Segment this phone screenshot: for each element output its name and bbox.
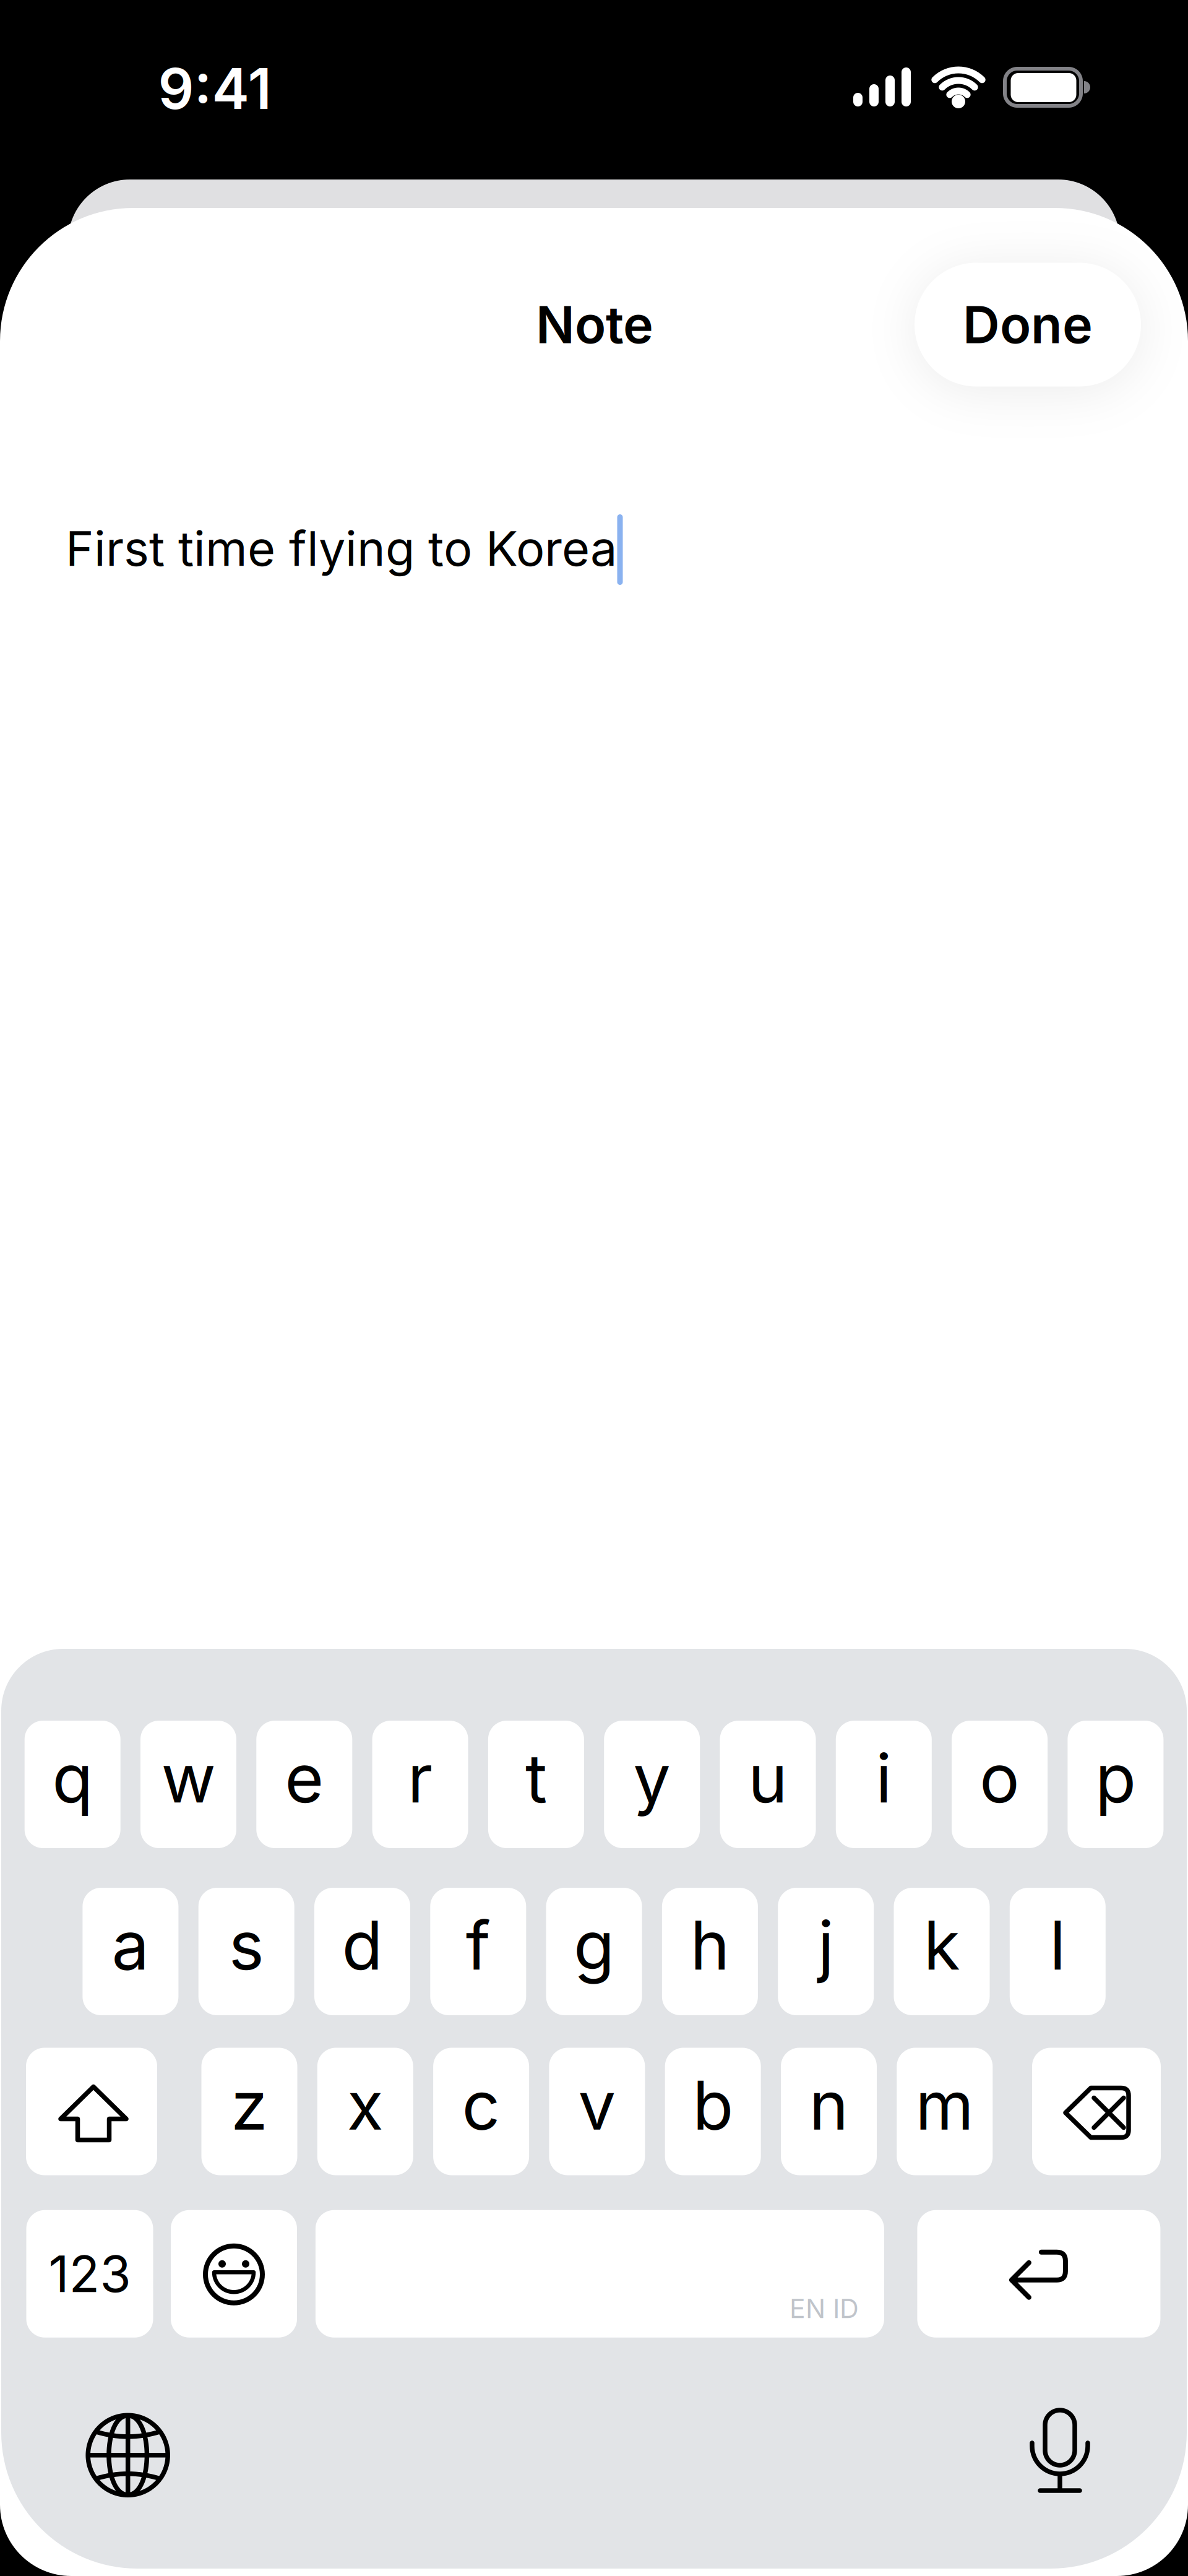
staticText: e: [285, 1739, 324, 1818]
staticText: n: [809, 2066, 849, 2145]
staticText: g: [574, 1906, 614, 1985]
button[interactable]: k: [894, 1888, 990, 2015]
staticText: m: [915, 2066, 974, 2145]
staticText: Note: [536, 294, 653, 355]
staticText: t: [525, 1739, 547, 1818]
staticText: 123: [49, 2244, 131, 2303]
button[interactable]: r: [372, 1721, 468, 1848]
button[interactable]: s: [198, 1888, 294, 2015]
button[interactable]: Next keyboard: [87, 2414, 169, 2496]
button[interactable]: v: [549, 2048, 645, 2175]
staticText: u: [748, 1739, 788, 1818]
button[interactable]: a: [83, 1888, 178, 2015]
button[interactable]: f: [430, 1888, 526, 2015]
staticText: o: [980, 1739, 1020, 1818]
button[interactable]: g: [546, 1888, 642, 2015]
staticText: First time flying to Korea: [66, 520, 617, 577]
button[interactable]: Space: [316, 2210, 884, 2338]
button[interactable]: 123: [26, 2210, 153, 2338]
button[interactable]: q: [25, 1721, 120, 1848]
button[interactable]: m: [897, 2048, 993, 2175]
staticText: k: [923, 1906, 960, 1985]
staticText: s: [229, 1906, 264, 1985]
button[interactable]: b: [665, 2048, 761, 2175]
staticText: i: [876, 1739, 892, 1818]
button[interactable]: Dictate: [1015, 2408, 1105, 2496]
button[interactable]: i: [836, 1721, 932, 1848]
staticText: c: [462, 2066, 500, 2145]
staticText: b: [693, 2066, 733, 2145]
button[interactable]: n: [781, 2048, 877, 2175]
button[interactable]: u: [720, 1721, 816, 1848]
button[interactable]: Emoji: [171, 2210, 297, 2338]
staticText: 9:41: [158, 55, 271, 122]
staticText: x: [347, 2066, 384, 2145]
staticText: f: [466, 1906, 491, 1985]
staticText: z: [231, 2066, 268, 2145]
button[interactable]: e: [256, 1721, 352, 1848]
button[interactable]: w: [140, 1721, 236, 1848]
staticText: Done: [963, 294, 1093, 355]
button[interactable]: Delete: [1032, 2048, 1161, 2175]
button[interactable]: d: [314, 1888, 410, 2015]
button[interactable]: h: [662, 1888, 758, 2015]
button[interactable]: Done: [915, 263, 1141, 387]
staticText: q: [52, 1739, 93, 1818]
button[interactable]: o: [952, 1721, 1048, 1848]
staticText: a: [112, 1906, 149, 1985]
staticText: y: [633, 1739, 671, 1818]
button[interactable]: Shift: [26, 2048, 157, 2175]
staticText: d: [342, 1906, 383, 1985]
button[interactable]: y: [604, 1721, 700, 1848]
staticText: EN ID: [789, 2293, 859, 2324]
staticText: w: [161, 1739, 216, 1818]
button[interactable]: Return: [917, 2210, 1160, 2338]
button[interactable]: p: [1068, 1721, 1163, 1848]
staticText: r: [408, 1739, 433, 1818]
button[interactable]: x: [317, 2048, 413, 2175]
button[interactable]: j: [778, 1888, 874, 2015]
button[interactable]: c: [433, 2048, 529, 2175]
button[interactable]: t: [488, 1721, 584, 1848]
staticText: p: [1095, 1739, 1136, 1818]
button[interactable]: l: [1010, 1888, 1106, 2015]
button[interactable]: z: [201, 2048, 297, 2175]
staticText: j: [818, 1906, 834, 1985]
staticText: l: [1050, 1906, 1066, 1985]
staticText: h: [690, 1906, 730, 1985]
staticText: v: [578, 2066, 616, 2145]
